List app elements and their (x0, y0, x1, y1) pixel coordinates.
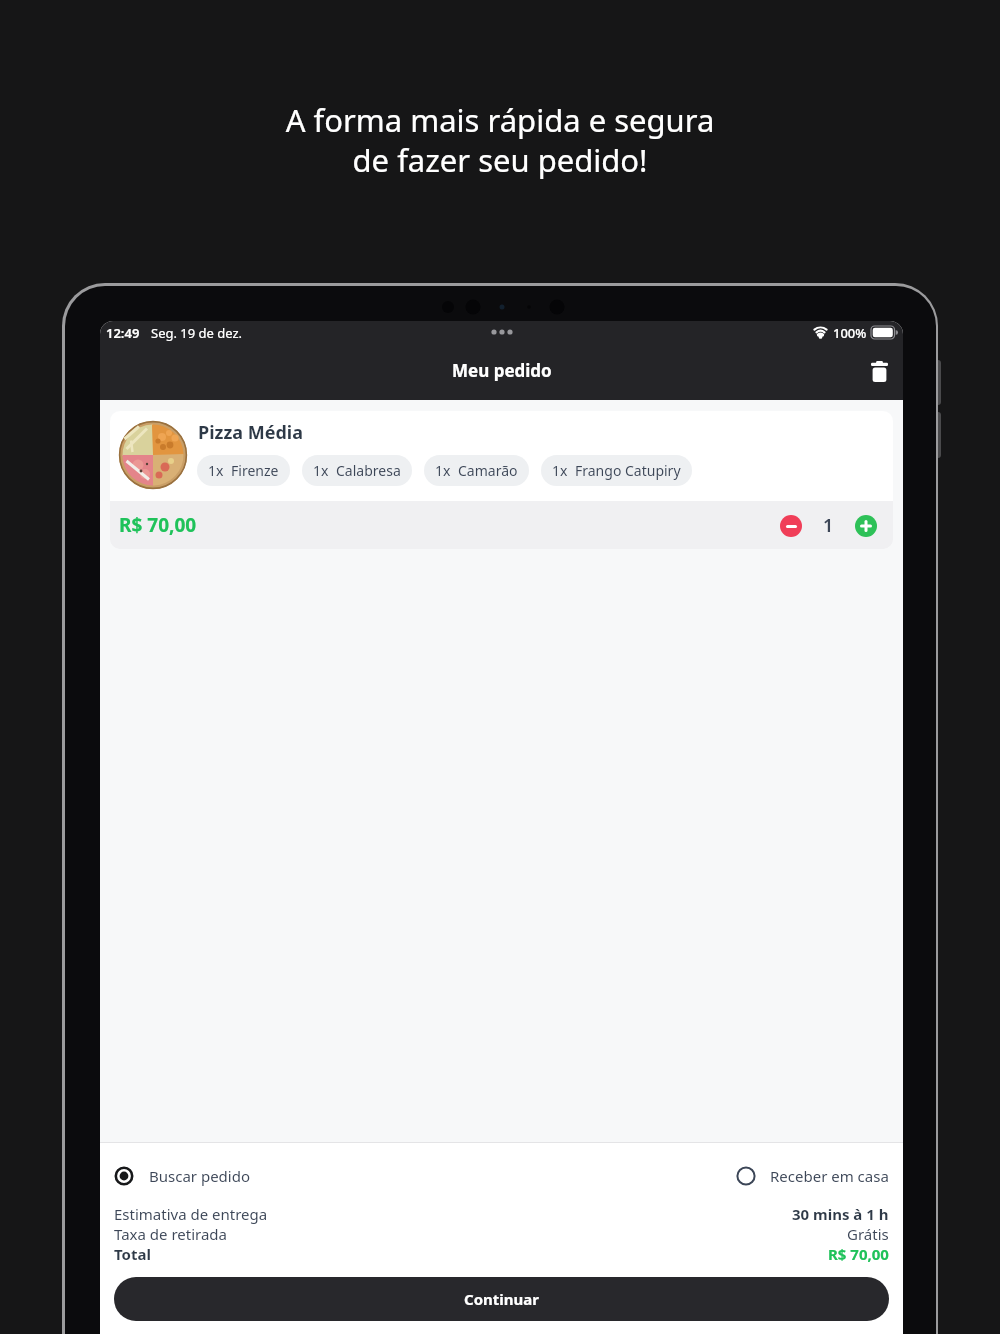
staticText: Buscar pedido (149, 1166, 250, 1186)
button[interactable]: Receber em casa (736, 1166, 889, 1186)
staticText: Seg. 19 de dez. (151, 324, 243, 342)
staticText: Calabresa (336, 461, 401, 480)
staticText: Receber em casa (770, 1166, 889, 1186)
staticText: Grátis (847, 1224, 889, 1244)
staticText: 1x (552, 461, 568, 480)
button[interactable] (780, 515, 802, 537)
staticText: Taxa de retirada (114, 1224, 227, 1244)
staticText: 100% (833, 324, 867, 342)
button[interactable]: Buscar pedido (114, 1166, 250, 1186)
staticText: Continuar (464, 1289, 539, 1309)
staticText: 1x (208, 461, 224, 480)
staticText: R$ 70,00 (119, 512, 197, 538)
staticText: R$ 70,00 (828, 1244, 889, 1264)
staticText: Pizza Média (198, 420, 304, 445)
staticText: A forma mais rápida e segura de fazer se… (0, 99, 1000, 181)
staticText: 1 (823, 513, 834, 538)
button[interactable] (867, 361, 891, 385)
button[interactable]: Continuar (114, 1277, 889, 1321)
button[interactable] (855, 515, 877, 537)
staticText: Estimativa de entrega (114, 1204, 268, 1224)
staticText: Total (114, 1244, 151, 1264)
staticText: 12:49 (106, 324, 140, 342)
staticText: 30 mins à 1 h (792, 1204, 889, 1224)
staticText: 1x (313, 461, 329, 480)
staticText: Firenze (231, 461, 279, 480)
staticText: Camarão (458, 461, 518, 480)
staticText: Meu pedido (452, 359, 552, 382)
staticText: Frango Catupiry (575, 461, 681, 480)
staticText: 1x (435, 461, 451, 480)
